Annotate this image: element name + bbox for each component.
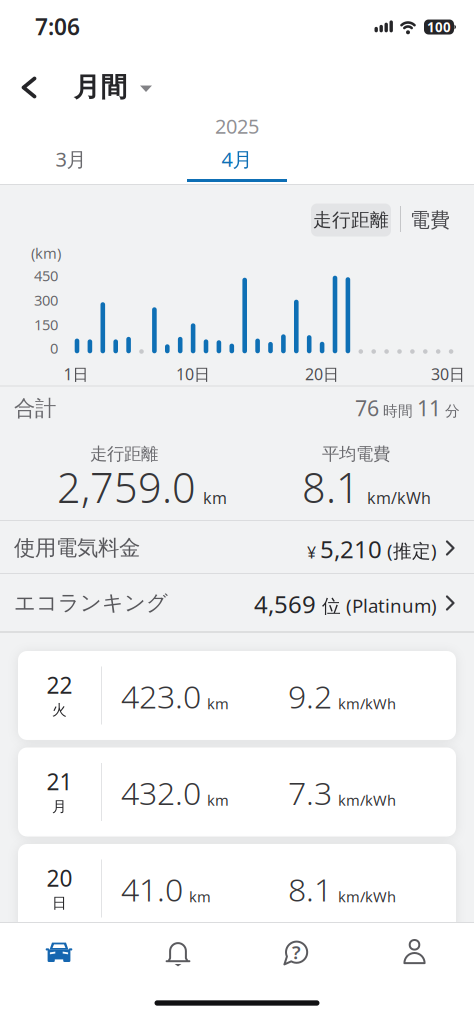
staticText: 電費: [410, 208, 450, 232]
staticText: 7:06: [35, 11, 80, 41]
staticText: km/kWh: [367, 487, 431, 508]
staticText: 7.3: [288, 771, 332, 814]
button[interactable]: 走行距離: [311, 203, 391, 236]
staticText: 1日: [63, 363, 88, 385]
staticText: 11: [417, 394, 441, 422]
staticText: 20日: [305, 363, 339, 385]
button[interactable]: 月間: [73, 71, 152, 103]
staticText: km: [207, 694, 229, 713]
staticText: 日: [52, 894, 67, 912]
button[interactable]: 22: [18, 651, 456, 740]
staticText: 2,759.0: [57, 460, 196, 514]
staticText: km: [203, 487, 227, 508]
staticText: 30日: [431, 363, 465, 385]
staticText: 22: [46, 670, 72, 700]
button[interactable]: 4月: [187, 143, 287, 175]
button[interactable]: Notifications: [163, 940, 193, 972]
staticText: km: [189, 887, 211, 906]
staticText: 450: [34, 266, 58, 285]
staticText: 位 (Platinum): [316, 593, 437, 618]
button[interactable]: Profile: [399, 937, 429, 967]
staticText: (推定): [382, 538, 437, 563]
button[interactable]: エコランキング: [14, 575, 460, 628]
staticText: 3月: [55, 146, 86, 172]
staticText: 走行距離: [313, 208, 389, 231]
button[interactable]: 使用電気料金: [14, 520, 460, 573]
staticText: ¥: [307, 542, 320, 563]
staticText: km/kWh: [338, 694, 396, 713]
staticText: 4月: [221, 146, 252, 172]
staticText: 時間: [383, 402, 413, 420]
staticText: 300: [34, 290, 58, 310]
button[interactable]: Help: [281, 938, 311, 968]
button[interactable]: Back: [15, 73, 45, 103]
staticText: 走行距離: [90, 443, 158, 465]
staticText: 10日: [176, 363, 210, 385]
staticText: 100: [427, 18, 451, 36]
staticText: km/kWh: [338, 887, 396, 906]
staticText: 2025: [215, 113, 259, 139]
staticText: エコランキング: [14, 590, 168, 616]
staticText: km: [207, 790, 229, 810]
staticText: ?: [292, 940, 301, 964]
staticText: 合計: [14, 395, 56, 422]
button[interactable]: 電費: [402, 203, 458, 236]
staticText: 20: [46, 863, 72, 893]
staticText: 150: [34, 315, 58, 334]
button[interactable]: My Car: [45, 940, 73, 964]
staticText: 月: [52, 797, 67, 815]
staticText: km/kWh: [338, 790, 396, 810]
staticText: 423.0: [121, 675, 201, 717]
staticText: 4,569: [254, 588, 316, 620]
staticText: (km): [31, 243, 61, 263]
button[interactable]: 21: [18, 747, 456, 836]
staticText: 41.0: [121, 868, 183, 910]
staticText: 432.0: [121, 771, 201, 814]
button[interactable]: 3月: [21, 143, 121, 175]
staticText: 21: [46, 766, 72, 796]
staticText: 5,210: [320, 533, 382, 565]
staticText: 9.2: [288, 675, 332, 717]
staticText: 分: [445, 402, 460, 420]
staticText: 8.1: [302, 460, 360, 514]
button[interactable]: 20: [18, 844, 456, 933]
staticText: 8.1: [288, 868, 332, 910]
staticText: 使用電気料金: [14, 535, 140, 561]
staticText: 月間: [73, 71, 127, 103]
staticText: 0: [50, 338, 58, 358]
staticText: 平均電費: [322, 443, 390, 465]
staticText: 火: [52, 701, 67, 719]
staticText: 76: [355, 394, 379, 422]
